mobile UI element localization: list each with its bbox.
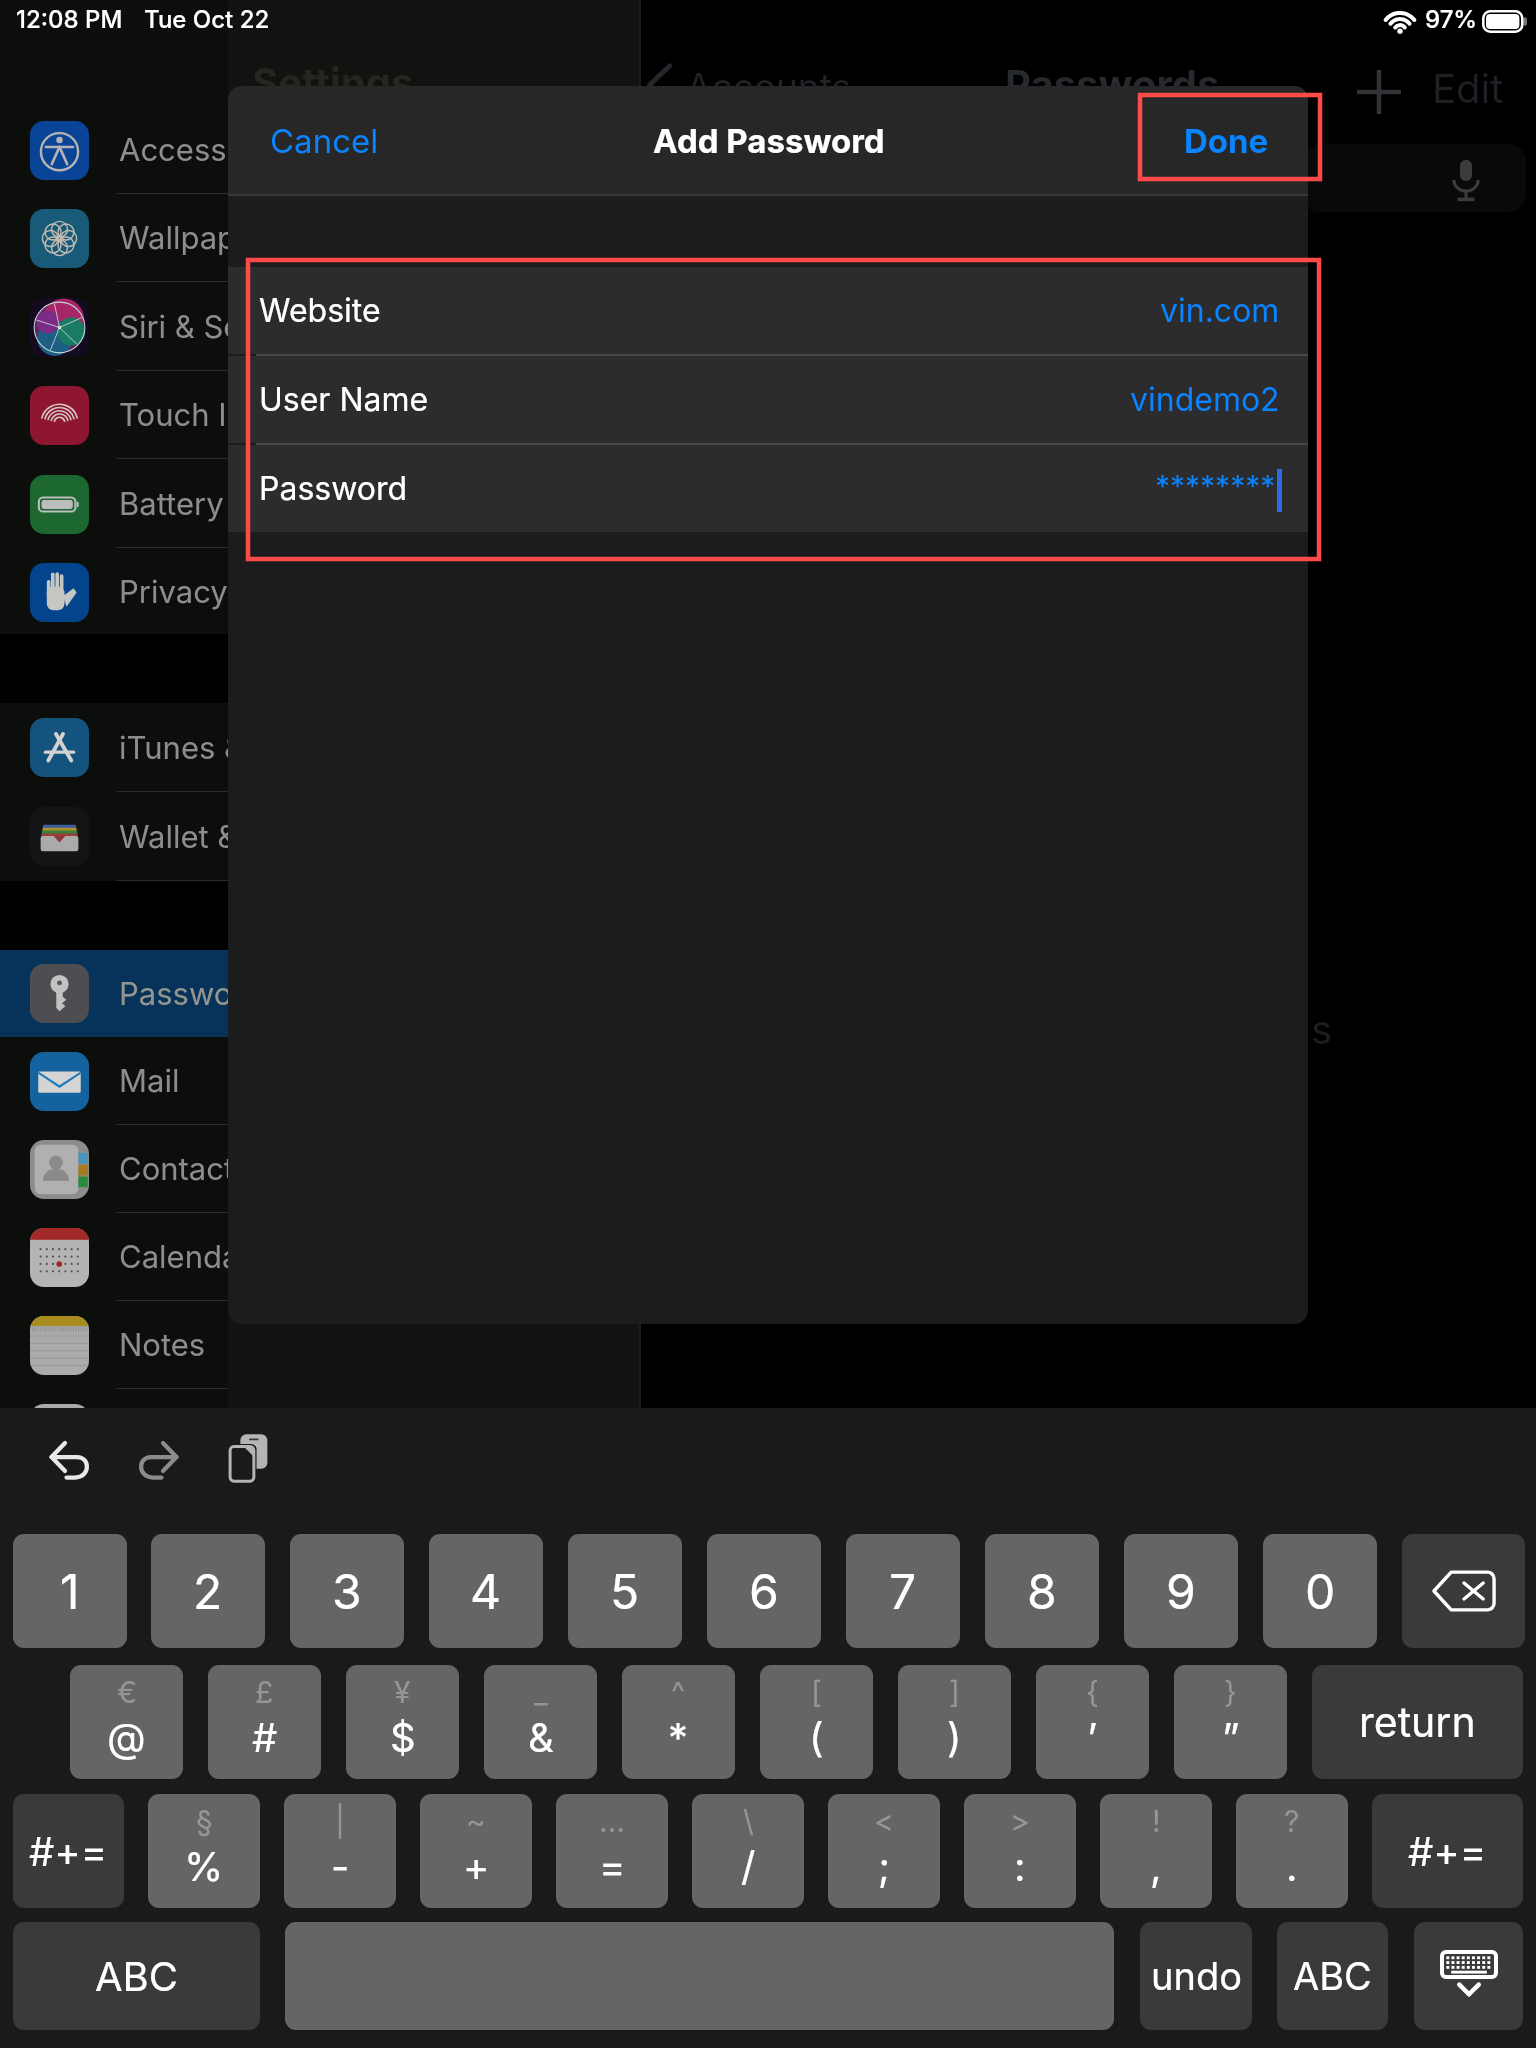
button[interactable]: Hide keyboard — [1414, 1922, 1523, 2030]
button[interactable]: Done — [1130, 86, 1308, 195]
button[interactable]: { — [1036, 1665, 1149, 1779]
button[interactable]: 8 — [985, 1534, 1099, 1648]
staticText: return — [1359, 1697, 1476, 1747]
staticText: \ — [743, 1803, 754, 1839]
button[interactable]: Siri & Search — [0, 283, 228, 371]
button[interactable]: Privacy — [0, 548, 228, 636]
button[interactable]: Accessibility — [0, 106, 228, 194]
staticText: ; — [878, 1842, 891, 1890]
button[interactable]: Password — [228, 445, 1308, 532]
staticText: 97% — [1425, 5, 1478, 34]
button[interactable]: 5 — [568, 1534, 682, 1648]
staticText: % — [184, 1842, 224, 1890]
button[interactable]: [ — [760, 1665, 873, 1779]
staticText: #+= — [29, 1827, 108, 1875]
button[interactable]: User Name — [228, 356, 1308, 443]
button[interactable]: iTunes & App Store — [0, 703, 228, 792]
staticText: iTunes & App Store — [119, 729, 228, 767]
staticText: - — [331, 1842, 350, 1890]
button[interactable]: Website — [228, 267, 1308, 354]
button[interactable]: ] — [898, 1665, 1011, 1779]
button[interactable]: 9 — [1124, 1534, 1238, 1648]
staticText: ? — [1284, 1803, 1300, 1839]
staticText: ¥ — [394, 1674, 411, 1710]
staticText: Accounts — [686, 64, 852, 109]
button[interactable]: ^ — [622, 1665, 735, 1779]
staticText: s — [1311, 1005, 1333, 1053]
button[interactable]: Battery — [0, 460, 228, 548]
staticText: @ — [107, 1713, 146, 1761]
button[interactable]: return — [1312, 1665, 1523, 1779]
button[interactable]: ? — [1236, 1794, 1348, 1908]
staticText: 2 — [193, 1562, 223, 1620]
staticText: Privacy — [119, 573, 228, 611]
button[interactable]: ABC — [13, 1922, 260, 2030]
staticText: Edit — [1432, 64, 1504, 112]
button[interactable]: 4 — [429, 1534, 543, 1648]
button[interactable]: Reminders — [0, 1389, 228, 1477]
button[interactable]: < — [828, 1794, 940, 1908]
button[interactable]: _ — [484, 1665, 597, 1779]
button[interactable]: Undo — [44, 1436, 94, 1486]
staticText: > — [1010, 1803, 1030, 1839]
staticText: 6 — [749, 1562, 779, 1620]
staticText: Wallpaper — [119, 219, 228, 257]
staticText: / — [741, 1842, 756, 1890]
staticText: Passwords — [1005, 60, 1220, 108]
button[interactable]: Touch ID & Passcode — [0, 371, 228, 459]
staticText: Battery — [119, 485, 224, 523]
button[interactable]: #+= — [1372, 1794, 1523, 1908]
staticText: { — [1086, 1674, 1099, 1710]
button[interactable]: Cancel — [250, 86, 410, 195]
button[interactable]: £ — [208, 1665, 321, 1779]
button[interactable]: Passwords — [0, 950, 228, 1037]
staticText: ] — [949, 1674, 960, 1710]
button[interactable]: 2 — [151, 1534, 265, 1648]
button[interactable]: \ — [692, 1794, 804, 1908]
button[interactable]: Mail — [0, 1037, 228, 1125]
button[interactable]: ABC — [1277, 1922, 1388, 2030]
staticText: User Name — [259, 380, 429, 419]
staticText: Touch ID & Passcode — [119, 396, 228, 434]
button[interactable]: € — [70, 1665, 183, 1779]
staticText: #+= — [1408, 1827, 1487, 1875]
staticText: 9 — [1166, 1562, 1196, 1620]
button[interactable]: ¥ — [346, 1665, 459, 1779]
button[interactable]: Paste — [222, 1432, 276, 1486]
staticText: Add Password — [653, 121, 885, 161]
button[interactable]: § — [148, 1794, 260, 1908]
staticText: ^ — [671, 1674, 686, 1710]
button[interactable]: Contacts — [0, 1125, 228, 1213]
button[interactable]: Calendar — [0, 1213, 228, 1301]
staticText: 8 — [1027, 1562, 1057, 1620]
staticText: : — [1014, 1842, 1026, 1890]
button[interactable]: … — [556, 1794, 668, 1908]
button[interactable]: Wallet & Apple Pay — [0, 792, 228, 881]
staticText: < — [874, 1803, 894, 1839]
staticText: ” — [1222, 1713, 1240, 1761]
button[interactable]: } — [1174, 1665, 1287, 1779]
button[interactable]: Notes — [0, 1301, 228, 1389]
staticText: Wallet & Apple Pay — [119, 818, 228, 856]
button[interactable]: > — [964, 1794, 1076, 1908]
staticText: Passwords — [119, 975, 228, 1013]
staticText: $ — [390, 1713, 416, 1761]
button[interactable]: Wallpaper — [0, 194, 228, 282]
staticText: = — [599, 1842, 626, 1890]
button[interactable]: | — [284, 1794, 396, 1908]
button[interactable]: 6 — [707, 1534, 821, 1648]
staticText: , — [1150, 1842, 1162, 1890]
button[interactable]: #+= — [13, 1794, 124, 1908]
button[interactable]: Delete — [1402, 1534, 1525, 1648]
button[interactable]: ! — [1100, 1794, 1212, 1908]
button[interactable]: 0 — [1263, 1534, 1377, 1648]
button[interactable]: 1 — [13, 1534, 127, 1648]
button[interactable]: ~ — [420, 1794, 532, 1908]
button[interactable]: 3 — [290, 1534, 404, 1648]
button[interactable]: 7 — [846, 1534, 960, 1648]
staticText: Cancel — [270, 121, 379, 161]
button[interactable]: Redo — [134, 1436, 184, 1486]
button[interactable]: undo — [1140, 1922, 1252, 2030]
staticText: Done — [1184, 121, 1269, 161]
